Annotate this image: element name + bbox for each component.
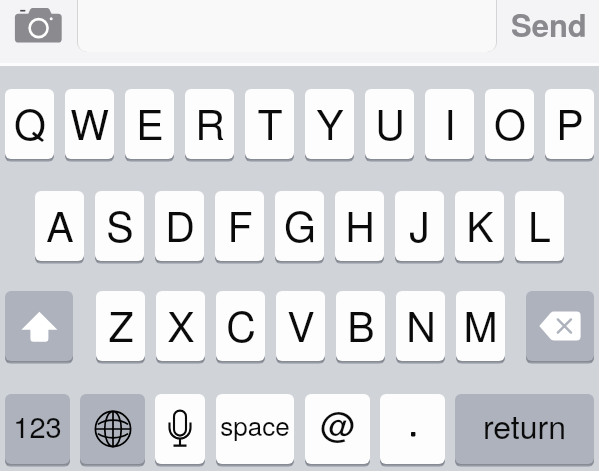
staticText: Y xyxy=(316,93,344,152)
button[interactable]: @ xyxy=(305,394,370,464)
button[interactable]: C xyxy=(216,291,265,361)
button[interactable]: R xyxy=(185,89,234,159)
staticText: @ xyxy=(320,398,356,448)
button[interactable]: space xyxy=(216,394,294,464)
button[interactable]: P xyxy=(545,89,594,159)
button[interactable]: Dictate xyxy=(155,394,205,464)
button[interactable]: W xyxy=(65,89,114,159)
button[interactable]: M xyxy=(456,291,505,361)
staticText: A xyxy=(46,195,74,254)
button[interactable]: L xyxy=(515,191,564,261)
staticText: J xyxy=(409,195,430,254)
button[interactable]: G xyxy=(275,191,324,261)
staticText: W xyxy=(70,93,109,152)
staticText: P xyxy=(556,93,584,152)
button[interactable]: Shift xyxy=(5,291,73,361)
button[interactable]: B xyxy=(336,291,385,361)
staticText: L xyxy=(528,195,551,254)
button[interactable]: S xyxy=(95,191,144,261)
button[interactable]: K xyxy=(455,191,504,261)
button[interactable]: H xyxy=(335,191,384,261)
staticText: space xyxy=(220,406,290,443)
staticText: E xyxy=(136,93,164,152)
staticText: Z xyxy=(108,295,134,354)
staticText: T xyxy=(257,93,283,152)
button[interactable]: I xyxy=(425,89,474,159)
staticText: B xyxy=(347,295,375,354)
staticText: S xyxy=(106,195,134,254)
staticText: C xyxy=(226,295,256,354)
button[interactable]: return xyxy=(455,394,594,464)
staticText: R xyxy=(195,93,225,152)
staticText: O xyxy=(494,93,526,152)
staticText: N xyxy=(406,295,436,354)
button[interactable]: N xyxy=(396,291,445,361)
button[interactable]: X xyxy=(156,291,205,361)
button[interactable]: A xyxy=(35,191,84,261)
button[interactable]: Next keyboard xyxy=(80,394,145,464)
staticText: K xyxy=(466,195,494,254)
staticText: I xyxy=(444,93,456,152)
staticText: G xyxy=(284,195,316,254)
button[interactable]: O xyxy=(485,89,534,159)
staticText: F xyxy=(227,195,253,254)
staticText: U xyxy=(375,93,405,152)
button[interactable]: V xyxy=(276,291,325,361)
staticText: H xyxy=(345,195,375,254)
button[interactable]: Camera xyxy=(12,6,64,46)
button[interactable]: Send xyxy=(505,2,593,52)
staticText: X xyxy=(167,295,195,354)
button[interactable]: 123 xyxy=(5,394,70,464)
button[interactable]: D xyxy=(155,191,204,261)
staticText: M xyxy=(463,295,498,354)
staticText: return xyxy=(483,402,566,448)
button[interactable]: Q xyxy=(5,89,54,159)
button[interactable]: Backspace xyxy=(526,291,594,361)
button[interactable]: Period xyxy=(380,394,445,464)
staticText: D xyxy=(165,195,195,254)
button[interactable]: F xyxy=(215,191,264,261)
button[interactable]: T xyxy=(245,89,294,159)
staticText: Send xyxy=(511,2,587,46)
button[interactable]: Z xyxy=(96,291,145,361)
staticText: Q xyxy=(14,93,46,152)
button[interactable]: Y xyxy=(305,89,354,159)
button[interactable]: U xyxy=(365,89,414,159)
button[interactable]: E xyxy=(125,89,174,159)
staticText: V xyxy=(287,295,315,354)
staticText: 123 xyxy=(13,405,62,447)
button[interactable]: J xyxy=(395,191,444,261)
